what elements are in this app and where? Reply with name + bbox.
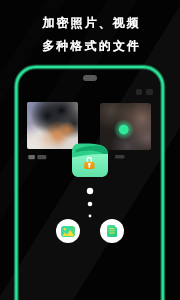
staticText: 加密照片、视频	[42, 16, 141, 31]
button[interactable]: Secure vault folder	[72, 143, 108, 177]
button[interactable]	[27, 102, 78, 149]
staticText: 多种格式的文件	[42, 39, 141, 54]
button[interactable]	[100, 103, 151, 150]
button[interactable]: Photos	[56, 219, 80, 243]
button[interactable]: Files	[100, 219, 124, 243]
